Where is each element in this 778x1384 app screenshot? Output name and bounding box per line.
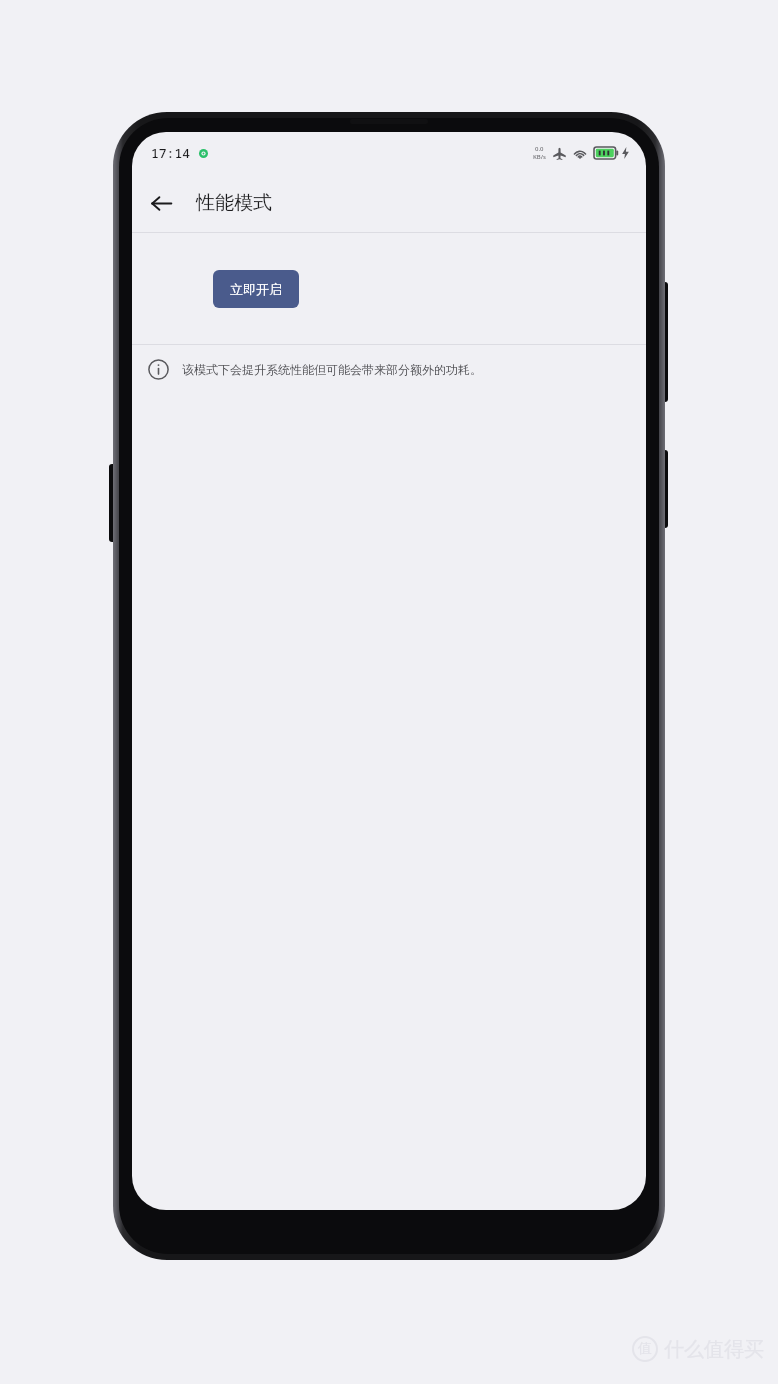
staticText: 0.0 [535,145,544,153]
staticText: 该模式下会提升系统性能但可能会带来部分额外的功耗。 [182,362,482,377]
button[interactable]: Back [138,180,184,226]
staticText: 性能模式 [196,191,272,215]
staticText: 17:14 [151,144,191,162]
staticText: KB/s [533,153,546,161]
staticText: 值 [638,1340,652,1358]
button[interactable]: 立即开启 [213,270,299,308]
staticText: 立即开启 [230,281,282,297]
staticText: 什么值得买 [664,1337,764,1362]
